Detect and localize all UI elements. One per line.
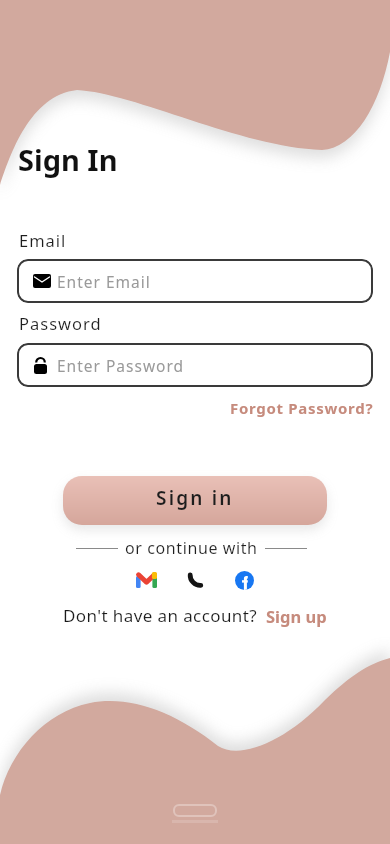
staticText: Forgot Password?: [230, 398, 374, 418]
button[interactable]: Enter Email: [17, 259, 373, 303]
button[interactable]: Forgot Password?: [230, 398, 374, 418]
staticText: Sign up: [266, 605, 327, 627]
staticText: or continue with: [125, 537, 258, 559]
staticText: Sign In: [18, 140, 118, 179]
staticText: Password: [19, 312, 102, 334]
button[interactable]: Enter Password: [17, 343, 373, 387]
button[interactable]: [233, 569, 255, 591]
staticText: Enter Password: [57, 355, 185, 376]
button[interactable]: [135, 569, 157, 591]
button[interactable]: Sign in: [63, 476, 327, 525]
button[interactable]: [184, 569, 206, 591]
staticText: Sign in: [156, 485, 234, 511]
staticText: Email: [19, 229, 67, 251]
staticText: Don't have an account?: [63, 604, 258, 627]
button[interactable]: Sign up: [266, 605, 327, 627]
staticText: Enter Email: [57, 271, 151, 292]
